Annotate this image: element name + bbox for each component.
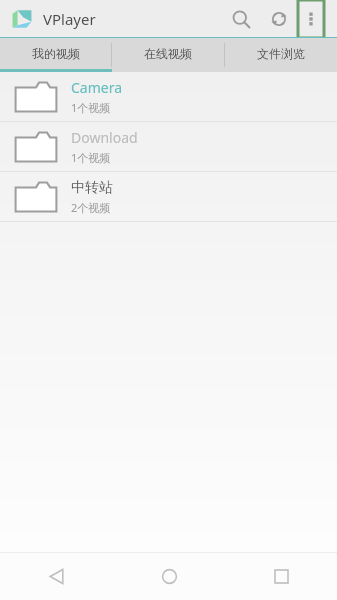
- staticText: 文件浏览: [257, 46, 305, 61]
- staticText: 我的视频: [32, 46, 80, 61]
- staticText: 在线视频: [144, 46, 192, 61]
- staticText: Camera: [71, 78, 123, 97]
- button[interactable]: Home: [113, 552, 225, 600]
- button[interactable]: Back: [0, 552, 113, 600]
- button[interactable]: Download: [0, 122, 337, 171]
- staticText: 中转站: [71, 179, 113, 197]
- button[interactable]: 我的视频: [0, 38, 111, 72]
- button[interactable]: More options: [298, 0, 324, 38]
- button[interactable]: Search: [222, 0, 260, 38]
- staticText: 1个视频: [71, 100, 111, 115]
- staticText: 2个视频: [71, 200, 111, 215]
- button[interactable]: 中转站: [0, 172, 337, 221]
- button[interactable]: Recents: [225, 552, 337, 600]
- staticText: Download: [71, 128, 138, 147]
- staticText: VPlayer: [43, 9, 96, 29]
- button[interactable]: 文件浏览: [225, 38, 337, 72]
- button[interactable]: 在线视频: [112, 38, 224, 72]
- button[interactable]: Camera: [0, 72, 337, 121]
- button[interactable]: Refresh: [260, 0, 298, 38]
- staticText: 1个视频: [71, 150, 111, 165]
